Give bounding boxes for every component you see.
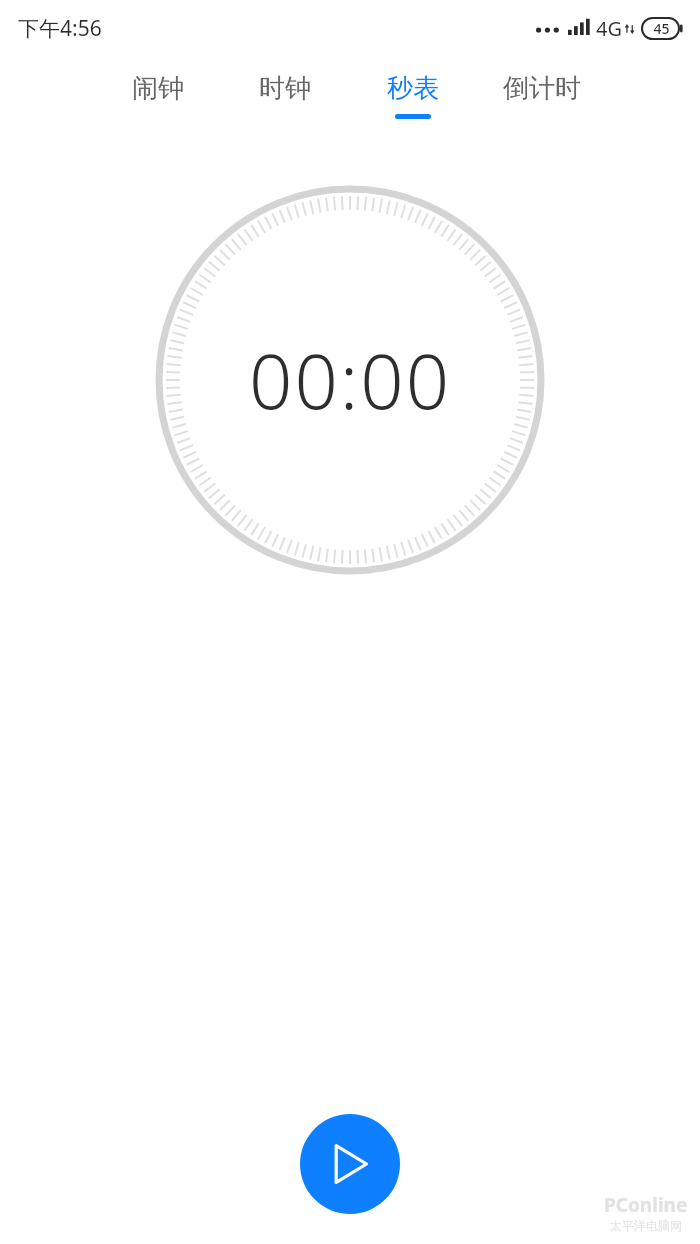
staticText: 闹钟 — [132, 72, 184, 105]
staticText: 时钟 — [259, 72, 311, 105]
staticText: 太平洋电脑网 — [610, 1218, 682, 1233]
button[interactable]: 闹钟 — [119, 56, 197, 140]
button[interactable]: 时钟 — [246, 56, 324, 140]
staticText: PConline — [604, 1192, 688, 1218]
staticText: 倒计时 — [503, 72, 581, 105]
button[interactable]: Start — [300, 1114, 400, 1214]
staticText: 4G — [596, 15, 622, 42]
staticText: 45 — [653, 19, 670, 38]
button[interactable]: 秒表 — [374, 56, 452, 140]
staticText: 00:00 — [249, 328, 452, 432]
staticText: 秒表 — [387, 72, 439, 105]
button[interactable]: 倒计时 — [488, 56, 596, 140]
staticText: 下午4:56 — [18, 14, 102, 43]
